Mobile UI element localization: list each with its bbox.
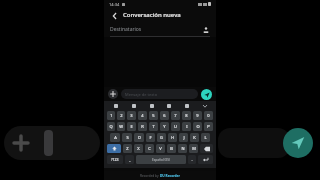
button[interactable]: Shift — [107, 144, 121, 153]
staticText: E — [130, 124, 133, 129]
staticText: S — [126, 135, 129, 140]
button[interactable]: C — [145, 144, 154, 153]
staticText: T — [152, 124, 155, 129]
button[interactable]: 8 — [182, 111, 191, 120]
button[interactable]: Enter — [198, 155, 213, 164]
button[interactable]: G — [157, 133, 166, 142]
button[interactable]: Keyboard tool 3 — [148, 102, 155, 109]
staticText: D — [138, 135, 141, 140]
staticText: Conversación nueva — [123, 11, 181, 19]
staticText: A — [114, 135, 117, 140]
button[interactable]: Keyboard tool 4 — [165, 102, 172, 109]
button[interactable]: 1 — [107, 111, 115, 120]
staticText: DU Recorder — [160, 174, 180, 178]
staticText: 8 — [185, 113, 188, 118]
staticText: Z — [126, 146, 129, 151]
button[interactable]: 3 — [127, 111, 136, 120]
staticText: V — [159, 146, 162, 151]
staticText: R — [141, 124, 144, 129]
staticText: 3 — [130, 113, 133, 118]
button[interactable]: Back — [109, 10, 120, 21]
staticText: 7 — [174, 113, 177, 118]
button[interactable]: S — [122, 133, 132, 142]
button[interactable]: M — [189, 144, 198, 153]
staticText: X — [137, 146, 140, 151]
button[interactable]: X — [134, 144, 143, 153]
staticText: ?123 — [111, 157, 119, 162]
button[interactable]: 5 — [149, 111, 158, 120]
staticText: J — [183, 135, 185, 140]
staticText: . — [191, 157, 193, 162]
staticText: 9 — [196, 113, 199, 118]
staticText: F — [149, 135, 152, 140]
button[interactable]: 7 — [171, 111, 180, 120]
button[interactable]: More options — [201, 102, 208, 109]
button[interactable]: P — [204, 122, 213, 131]
button[interactable]: F — [146, 133, 155, 142]
button[interactable]: Y — [160, 122, 169, 131]
button[interactable]: . — [188, 155, 196, 164]
button[interactable]: ?123 — [107, 155, 123, 164]
staticText: U — [174, 124, 177, 129]
button[interactable]: 2 — [117, 111, 125, 120]
button[interactable]: N — [178, 144, 187, 153]
button[interactable]: R — [138, 122, 147, 131]
staticText: Y — [163, 124, 166, 129]
button[interactable]: O — [193, 122, 202, 131]
staticText: P — [207, 124, 210, 129]
staticText: L — [204, 135, 207, 140]
button[interactable]: 9 — [193, 111, 202, 120]
button[interactable]: Send — [201, 89, 212, 100]
button[interactable]: W — [117, 122, 125, 131]
button[interactable]: V — [156, 144, 165, 153]
staticText: 0 — [207, 113, 210, 118]
button[interactable]: Add recipient — [201, 25, 210, 34]
button[interactable]: H — [168, 133, 177, 142]
button[interactable]: Español (ES) — [136, 155, 186, 164]
button[interactable]: Backspace — [200, 144, 213, 153]
staticText: K — [193, 135, 196, 140]
button[interactable]: , — [125, 155, 134, 164]
button[interactable]: Q — [107, 122, 115, 131]
button[interactable]: Keyboard tool 1 — [112, 102, 119, 109]
staticText: , — [129, 157, 131, 162]
button[interactable]: Destinatarios — [110, 22, 210, 36]
staticText: 2 — [120, 113, 123, 118]
staticText: B — [170, 146, 173, 151]
button[interactable]: L — [201, 133, 210, 142]
button[interactable]: 4 — [138, 111, 147, 120]
staticText: Destinatarios — [110, 26, 142, 33]
staticText: Español (ES) — [152, 158, 171, 162]
button[interactable]: J — [179, 133, 188, 142]
staticText: 6 — [163, 113, 166, 118]
button[interactable]: 6 — [160, 111, 169, 120]
staticText: G — [160, 135, 163, 140]
button[interactable]: Z — [123, 144, 132, 153]
button[interactable]: K — [190, 133, 199, 142]
staticText: Mensaje de texto — [125, 92, 158, 97]
button[interactable]: I — [182, 122, 191, 131]
staticText: 1 — [110, 113, 113, 118]
button[interactable]: Keyboard tool 5 — [183, 102, 190, 109]
staticText: I — [186, 124, 188, 129]
button[interactable]: U — [171, 122, 180, 131]
staticText: Recorded by — [140, 174, 160, 178]
staticText: H — [171, 135, 174, 140]
button[interactable]: 0 — [204, 111, 213, 120]
button[interactable]: A — [110, 133, 120, 142]
staticText: M — [192, 146, 196, 151]
button[interactable]: Mensaje de texto — [121, 89, 198, 99]
staticText: 4 — [141, 113, 144, 118]
button[interactable]: D — [134, 133, 144, 142]
button[interactable]: E — [127, 122, 136, 131]
button[interactable]: B — [167, 144, 176, 153]
staticText: W — [119, 124, 123, 129]
button[interactable]: T — [149, 122, 158, 131]
staticText: 5 — [152, 113, 155, 118]
staticText: 14:34 — [109, 2, 120, 7]
staticText: C — [148, 146, 151, 151]
staticText: N — [181, 146, 185, 151]
button[interactable]: Add attachment — [108, 89, 118, 99]
button[interactable]: Keyboard tool 2 — [130, 102, 137, 109]
staticText: O — [196, 124, 200, 129]
